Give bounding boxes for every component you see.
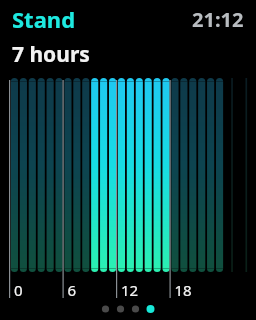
button[interactable]: Stand hours chart, 7 hours	[0, 0, 256, 320]
other: Stand hours chart, 7 hours	[0, 0, 256, 320]
